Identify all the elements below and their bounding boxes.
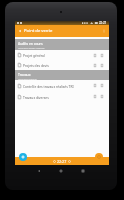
button[interactable]: Travaux bbox=[15, 70, 109, 80]
button[interactable]: Projets des devis bbox=[15, 60, 109, 70]
staticText: Projet général bbox=[23, 53, 45, 57]
staticText: Projets des devis bbox=[23, 63, 49, 67]
staticText: Liste des travaux bbox=[18, 77, 37, 80]
button[interactable]: Contrôle des travaux réalisés TRI bbox=[15, 80, 109, 91]
staticText: Travaux diverses bbox=[23, 95, 49, 99]
staticText: 22:27 bbox=[57, 159, 67, 164]
button[interactable]: Edit bbox=[94, 54, 96, 57]
button[interactable]: Recent apps bbox=[80, 168, 86, 174]
staticText: Contrôle des travaux réalisés TRI bbox=[23, 84, 74, 88]
button[interactable]: Options bbox=[95, 153, 103, 161]
button[interactable]: Home bbox=[58, 168, 64, 174]
button[interactable]: Projet général bbox=[15, 50, 109, 60]
button[interactable]: Delete bbox=[101, 64, 103, 67]
button[interactable]: Add project bbox=[19, 153, 27, 161]
button[interactable]: Audits en cours bbox=[15, 39, 109, 50]
button[interactable]: Navigate up bbox=[17, 28, 23, 34]
staticText: Audits en cours bbox=[18, 41, 43, 46]
button[interactable]: Edit bbox=[94, 84, 96, 87]
button[interactable]: Edit bbox=[94, 95, 96, 98]
staticText: Travaux bbox=[18, 72, 31, 77]
staticText: 22:27 bbox=[99, 21, 107, 25]
staticText: Liste des audits réalisés bbox=[18, 46, 45, 49]
button[interactable]: More options bbox=[101, 28, 107, 34]
button[interactable]: Delete bbox=[101, 84, 103, 87]
button[interactable]: Travaux diverses bbox=[15, 91, 109, 102]
button[interactable]: Back bbox=[36, 168, 42, 174]
staticText: Point de vente bbox=[24, 28, 53, 34]
button[interactable]: Navigate up bbox=[15, 25, 109, 37]
button[interactable]: Delete bbox=[101, 54, 103, 57]
button[interactable]: Edit bbox=[94, 64, 96, 67]
button[interactable]: Delete bbox=[101, 95, 103, 98]
